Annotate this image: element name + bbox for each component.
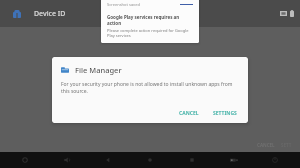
staticText: CANCEL — [257, 142, 275, 148]
button[interactable]: Recents — [175, 152, 209, 168]
staticText: CANCEL — [179, 110, 199, 117]
staticText: SETTINGS — [213, 110, 237, 117]
button[interactable]: Home — [133, 152, 167, 168]
staticText: For your security your phone is not allo… — [61, 81, 239, 95]
staticText: Google Play services requires an action — [107, 14, 193, 26]
button[interactable]: Volume — [50, 152, 84, 168]
button[interactable]: Screenshot saved — [101, 0, 199, 43]
button[interactable]: Device icon — [9, 6, 25, 22]
staticText: Device ID — [34, 9, 66, 19]
button[interactable]: Power — [8, 152, 42, 168]
staticText: Screenshot saved — [107, 2, 140, 7]
button[interactable]: SETTINGS — [208, 107, 242, 120]
staticText: File Manager — [75, 65, 122, 75]
button[interactable]: Screenshot — [217, 152, 251, 168]
staticText: Please complete action required for Goog… — [107, 28, 193, 38]
button[interactable]: CANCEL — [174, 107, 204, 120]
